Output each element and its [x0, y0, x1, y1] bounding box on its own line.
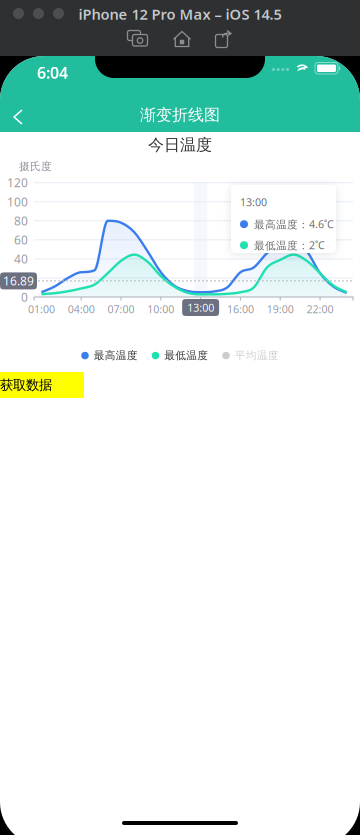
staticText: 13:00	[240, 195, 267, 209]
staticText: 01:00	[28, 302, 55, 316]
staticText: 摄氏度	[19, 160, 52, 173]
staticText: 最高温度：4.6˚C	[254, 217, 334, 231]
staticText: 13:00	[187, 300, 214, 315]
button[interactable]: 最高温度	[81, 346, 138, 365]
button[interactable]: 最低温度	[152, 346, 208, 365]
staticText: 渐变折线图	[140, 105, 220, 125]
button[interactable]: 获取数据	[0, 372, 84, 398]
staticText: 40	[14, 251, 28, 267]
button[interactable]: Screenshot	[127, 30, 148, 47]
button[interactable]: Back	[0, 100, 34, 134]
button[interactable]: Home	[172, 30, 191, 47]
staticText: 平均温度	[235, 349, 279, 362]
staticText: 19:00	[267, 302, 294, 316]
staticText: 最高温度	[94, 349, 138, 362]
staticText: 07:00	[107, 302, 134, 316]
staticText: 6:04	[37, 62, 68, 83]
staticText: 16.89	[3, 273, 34, 289]
staticText: 获取数据	[0, 377, 52, 393]
button[interactable]: 平均温度	[222, 346, 279, 365]
staticText: 100	[7, 194, 28, 210]
staticText: 120	[7, 175, 28, 191]
staticText: 04:00	[68, 302, 95, 316]
staticText: 80	[14, 213, 28, 229]
staticText: 22:00	[307, 302, 334, 316]
button[interactable]: Rotate device	[215, 30, 232, 47]
staticText: iPhone 12 Pro Max – iOS 14.5	[78, 4, 281, 24]
staticText: 最低温度：2˚C	[254, 238, 325, 252]
staticText: 60	[14, 232, 28, 248]
staticText: 16:00	[227, 302, 254, 316]
staticText: 0	[21, 289, 28, 305]
staticText: 今日温度	[148, 135, 212, 155]
staticText: 最低温度	[164, 349, 208, 362]
staticText: 10:00	[147, 302, 174, 316]
